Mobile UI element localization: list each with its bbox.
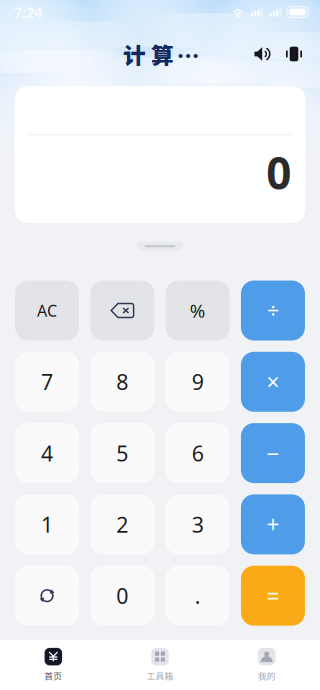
button[interactable]: Sound bbox=[252, 39, 276, 69]
button[interactable] bbox=[90, 423, 154, 483]
staticText: 7 bbox=[41, 368, 53, 396]
staticText: AC bbox=[37, 300, 57, 321]
button[interactable] bbox=[241, 352, 305, 412]
button[interactable]: Delete bbox=[90, 280, 154, 340]
button[interactable]: 工具箱 bbox=[107, 640, 213, 690]
button[interactable] bbox=[166, 494, 230, 554]
staticText: − bbox=[266, 438, 279, 468]
button[interactable]: Convert bbox=[15, 566, 79, 626]
staticText: 工具箱 bbox=[146, 669, 173, 682]
staticText: = bbox=[266, 581, 279, 611]
staticText: 4 bbox=[41, 439, 53, 467]
button[interactable] bbox=[15, 494, 79, 554]
button[interactable] bbox=[90, 352, 154, 412]
staticText: 8 bbox=[116, 368, 128, 396]
staticText: 5 bbox=[116, 439, 128, 467]
staticText: % bbox=[190, 298, 206, 323]
button[interactable] bbox=[15, 280, 79, 340]
button[interactable] bbox=[241, 423, 305, 483]
button[interactable] bbox=[241, 280, 305, 340]
staticText: 我的 bbox=[258, 669, 276, 682]
staticText: 计算器 bbox=[123, 38, 202, 70]
button[interactable] bbox=[15, 352, 79, 412]
button[interactable]: 我的 bbox=[213, 640, 320, 690]
staticText: 1 bbox=[41, 510, 53, 538]
button[interactable] bbox=[90, 566, 154, 626]
button[interactable]: 首页 bbox=[0, 640, 107, 690]
staticText: ÷ bbox=[267, 296, 279, 325]
staticText: 0 bbox=[116, 581, 128, 610]
staticText: 9 bbox=[192, 368, 204, 396]
button[interactable] bbox=[241, 566, 305, 626]
button[interactable] bbox=[15, 423, 79, 483]
button[interactable] bbox=[166, 566, 230, 626]
staticText: + bbox=[266, 509, 279, 539]
staticText: × bbox=[266, 367, 279, 397]
staticText: 2 bbox=[116, 510, 128, 538]
staticText: 3 bbox=[192, 510, 204, 538]
button[interactable] bbox=[166, 423, 230, 483]
staticText: 0 bbox=[266, 143, 291, 202]
button[interactable] bbox=[166, 352, 230, 412]
staticText: 7:24 bbox=[14, 2, 42, 22]
button[interactable] bbox=[90, 494, 154, 554]
staticText: 6 bbox=[192, 439, 204, 467]
button[interactable]: Vibrate bbox=[284, 39, 304, 69]
button[interactable] bbox=[166, 280, 230, 340]
staticText: . bbox=[195, 581, 201, 610]
button[interactable] bbox=[241, 494, 305, 554]
staticText: 首页 bbox=[44, 669, 62, 682]
